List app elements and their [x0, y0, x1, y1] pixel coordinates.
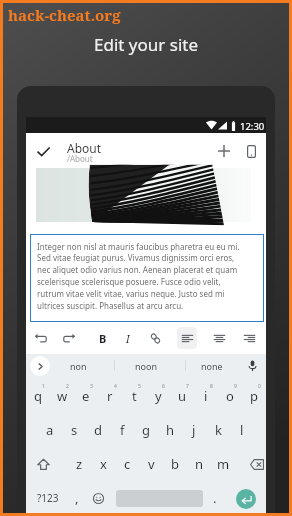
staticText: a [46, 421, 54, 439]
button[interactable]: noon [120, 354, 172, 378]
button[interactable]: o [218, 379, 242, 413]
button[interactable]: B [90, 325, 116, 351]
button[interactable]: x [91, 447, 115, 481]
button[interactable]: Backspace [242, 447, 272, 481]
button[interactable]: f [110, 413, 134, 447]
staticText: 6 [162, 383, 165, 390]
button[interactable]: k [206, 413, 230, 447]
button[interactable]: Align left [174, 325, 200, 351]
button[interactable]: j [182, 413, 206, 447]
staticText: e [82, 387, 90, 405]
staticText: . [213, 489, 217, 507]
button[interactable]: . [205, 481, 225, 515]
staticText: i [204, 387, 208, 405]
staticText: non [70, 360, 87, 372]
staticText: g [142, 421, 150, 439]
button[interactable]: u [170, 379, 194, 413]
button[interactable]: none [186, 354, 238, 378]
staticText: About [67, 140, 102, 156]
staticText: v [148, 455, 155, 473]
button[interactable]: Align right [236, 325, 262, 351]
staticText: Integer non nisl at mauris faucibus phar… [37, 241, 249, 311]
button[interactable]: More suggestions [30, 356, 50, 376]
staticText: noon [135, 360, 158, 372]
button[interactable]: Redo [56, 325, 82, 351]
staticText: Edit your site [0, 33, 292, 56]
button[interactable]: e [74, 379, 98, 413]
staticText: b [171, 455, 179, 473]
staticText: c [124, 455, 131, 473]
button[interactable]: Add [210, 137, 238, 165]
button[interactable]: a [38, 413, 62, 447]
button[interactable]: d [86, 413, 110, 447]
button[interactable]: , [66, 481, 88, 515]
staticText: hack-cheat.org [8, 5, 121, 25]
button[interactable]: m [211, 447, 235, 481]
staticText: , [75, 489, 79, 507]
staticText: r [107, 387, 113, 405]
button[interactable]: l [230, 413, 254, 447]
staticText: y [155, 387, 162, 405]
staticText: 7 [186, 383, 189, 390]
staticText: u [178, 387, 187, 405]
button[interactable]: p [242, 379, 266, 413]
staticText: 5 [138, 383, 141, 390]
staticText: p [250, 387, 258, 405]
button[interactable]: Align center [206, 325, 232, 351]
button[interactable]: z [67, 447, 91, 481]
staticText: 3 [90, 383, 93, 390]
button[interactable]: g [134, 413, 158, 447]
staticText: h [166, 421, 175, 439]
staticText: w [57, 387, 68, 405]
staticText: z [76, 455, 83, 473]
button[interactable]: Preview device [237, 137, 265, 165]
button[interactable]: Done [29, 137, 57, 165]
staticText: ?123 [37, 491, 59, 505]
button[interactable]: b [163, 447, 187, 481]
button[interactable]: Emoji [87, 481, 109, 515]
button[interactable]: h [158, 413, 182, 447]
staticText: j [192, 421, 196, 439]
staticText: m [217, 455, 230, 473]
staticText: none [201, 360, 223, 372]
staticText: 1 [42, 383, 45, 390]
staticText: 2 [66, 383, 69, 390]
button[interactable]: q [26, 379, 50, 413]
button[interactable]: Link [142, 325, 168, 351]
button[interactable]: t [122, 379, 146, 413]
button[interactable]: ?123 [32, 481, 64, 515]
staticText: B [99, 331, 107, 346]
staticText: o [226, 387, 234, 405]
button[interactable]: r [98, 379, 122, 413]
staticText: t [132, 387, 137, 405]
button[interactable]: Undo [27, 325, 53, 351]
staticText: 9 [234, 383, 237, 390]
button[interactable]: Enter [236, 489, 256, 509]
button[interactable]: w [50, 379, 74, 413]
button[interactable]: y [146, 379, 170, 413]
button[interactable]: non [52, 354, 104, 378]
button[interactable]: c [115, 447, 139, 481]
staticText: 12:30 [240, 120, 265, 133]
staticText: x [100, 455, 107, 473]
button[interactable]: i [194, 379, 218, 413]
staticText: d [94, 421, 102, 439]
staticText: q [34, 387, 42, 405]
button[interactable]: s [62, 413, 86, 447]
staticText: 4 [114, 383, 117, 390]
button[interactable]: n [187, 447, 211, 481]
staticText: l [240, 421, 244, 439]
button[interactable]: v [139, 447, 163, 481]
staticText: k [215, 421, 222, 439]
staticText: f [120, 421, 125, 439]
button[interactable]: I [115, 325, 141, 351]
staticText: s [71, 421, 78, 439]
button[interactable]: Shift [30, 447, 56, 481]
staticText: /About [67, 153, 93, 164]
button[interactable]: Integer non nisl at mauris faucibus phar… [30, 234, 264, 322]
staticText: I [126, 331, 130, 346]
button[interactable]: Voice input [241, 355, 263, 377]
staticText: 0 [258, 383, 261, 390]
staticText: n [195, 455, 204, 473]
